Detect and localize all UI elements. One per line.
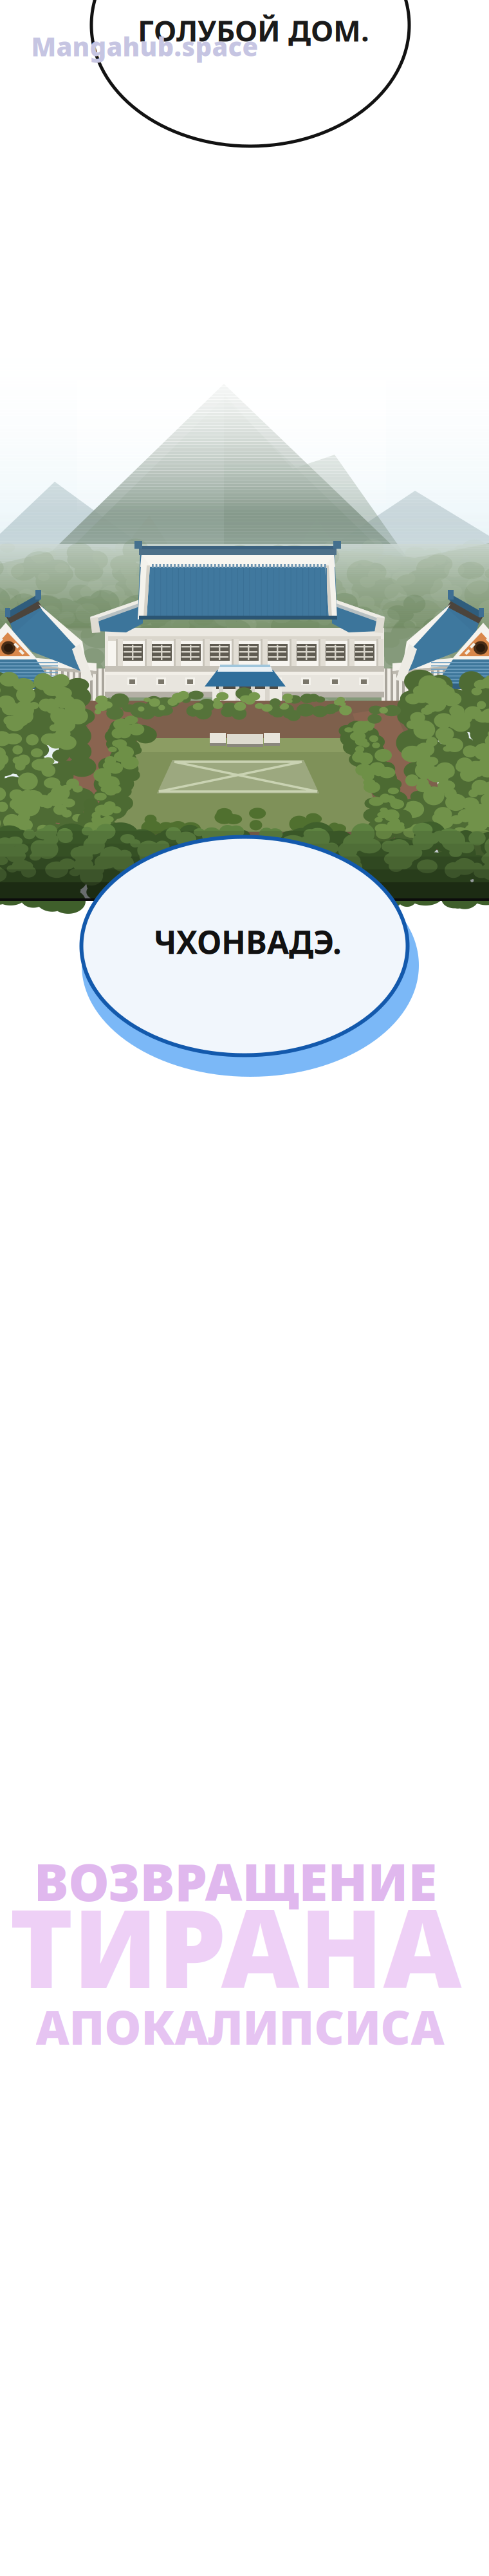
staticText: ТИРАНА	[9, 1874, 462, 2018]
staticText: ЧХОНВАДЭ.	[154, 920, 342, 963]
staticText: ГОЛУБОЙ ДОМ.	[138, 11, 369, 50]
staticText: Mangahub.space	[31, 29, 258, 63]
staticText: АПОКАЛИПСИСА	[36, 1996, 444, 2057]
staticText: ВОЗВРАЩЕНИЕ	[34, 1847, 437, 1915]
